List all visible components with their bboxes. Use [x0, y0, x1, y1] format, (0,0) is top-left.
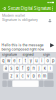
staticText: c — [21, 74, 23, 78]
staticText: k — [44, 66, 46, 71]
button[interactable]: d — [14, 65, 19, 72]
button[interactable]: j — [37, 65, 42, 72]
button[interactable] — [12, 81, 38, 87]
button[interactable]: t — [23, 57, 28, 64]
staticText: h — [33, 66, 35, 71]
staticText: sign — [43, 52, 50, 57]
button[interactable] — [44, 81, 54, 87]
button[interactable]: g — [25, 65, 30, 72]
button[interactable]: h — [31, 65, 36, 72]
staticText: i — [41, 58, 42, 63]
staticText: b — [33, 74, 35, 78]
button[interactable]: e — [12, 57, 17, 64]
staticText: m — [43, 74, 47, 78]
staticText: Secure Digital Signature — [8, 6, 51, 11]
button[interactable]: r — [17, 57, 22, 64]
button[interactable]: y — [28, 57, 33, 64]
staticText: w — [7, 58, 10, 63]
staticText: q — [2, 58, 4, 63]
button[interactable]: z — [9, 73, 14, 79]
button[interactable]: u — [34, 57, 39, 64]
button[interactable]: p — [50, 57, 55, 64]
button[interactable]: i — [39, 57, 44, 64]
staticText: f — [22, 66, 23, 71]
button[interactable]: w — [6, 57, 11, 64]
button[interactable]: q — [0, 57, 5, 64]
button[interactable] — [7, 81, 12, 87]
staticText: Modern wallet Signature is obligatory — [2, 13, 38, 22]
staticText: l — [50, 66, 51, 71]
button[interactable]: a — [3, 65, 8, 72]
button[interactable]: x — [14, 73, 19, 79]
staticText: d — [16, 66, 18, 71]
button[interactable]: f — [20, 65, 25, 72]
staticText: r — [19, 58, 21, 63]
button[interactable]: Send — [50, 43, 56, 48]
staticText: e — [13, 58, 15, 63]
staticText: o — [46, 58, 48, 63]
staticText: j — [39, 66, 40, 71]
staticText: n — [38, 74, 40, 78]
staticText: y — [30, 58, 32, 63]
staticText: s — [10, 66, 12, 71]
staticText: u — [35, 58, 37, 63]
staticText: g — [27, 66, 29, 71]
button[interactable]: s — [9, 65, 14, 72]
button[interactable]: n — [37, 73, 42, 79]
button[interactable]: c — [20, 73, 25, 79]
button[interactable] — [2, 81, 7, 87]
button[interactable]: m — [42, 73, 47, 79]
button[interactable] — [39, 81, 44, 87]
staticText: z — [10, 74, 12, 78]
button[interactable]: b — [31, 73, 36, 79]
staticText: t — [25, 58, 26, 63]
button[interactable]: l — [48, 65, 53, 72]
staticText: a — [5, 66, 7, 71]
button[interactable]: k — [42, 65, 47, 72]
button[interactable]: Back — [0, 5, 6, 12]
staticText: x — [16, 74, 18, 78]
button[interactable]: More options — [51, 5, 56, 12]
staticText: signature — [2, 52, 17, 57]
button[interactable]: v — [25, 73, 30, 79]
staticText: p — [52, 58, 54, 63]
button[interactable]: o — [45, 57, 50, 64]
staticText: Hello this is the message being composed… — [1, 43, 44, 56]
staticText: v — [27, 74, 29, 78]
staticText: signed — [22, 52, 33, 57]
